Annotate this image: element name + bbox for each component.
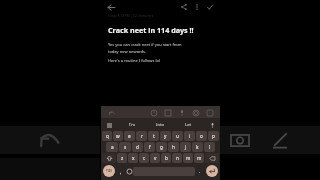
staticText: ?123 <box>106 169 112 173</box>
staticText: n <box>176 155 179 161</box>
button[interactable]: Modifier key <box>205 153 219 163</box>
staticText: . <box>199 168 201 174</box>
button[interactable]: r <box>136 131 147 141</box>
button[interactable]: v <box>150 153 160 163</box>
button[interactable]: translate <box>163 108 172 117</box>
button[interactable]: d <box>132 142 143 152</box>
button[interactable]: Symbols <box>103 165 115 177</box>
staticText: d <box>136 144 139 150</box>
staticText: Crack neet in 114 days !! <box>108 25 194 35</box>
staticText: r <box>141 133 143 139</box>
button[interactable]: m <box>194 153 204 163</box>
button[interactable]: m <box>183 153 193 163</box>
button[interactable]: clock <box>149 108 158 117</box>
button[interactable]: More options <box>192 2 202 12</box>
staticText: k <box>196 144 199 150</box>
button[interactable]: Period <box>196 167 204 175</box>
button[interactable]: Clipboard <box>105 121 113 129</box>
button[interactable]: o <box>196 131 207 141</box>
staticText: Yes you can crack neet if you start from… <box>108 42 182 54</box>
staticText: y <box>164 133 167 139</box>
staticText: t <box>153 133 155 139</box>
staticText: , <box>120 169 122 175</box>
staticText: l <box>209 144 211 150</box>
button[interactable]: c <box>139 153 149 163</box>
button[interactable]: l <box>204 142 215 152</box>
staticText: c <box>143 155 146 161</box>
staticText: x <box>132 155 135 161</box>
button[interactable]: s <box>119 142 131 152</box>
button[interactable]: j <box>180 142 191 152</box>
button[interactable]: p <box>208 131 219 141</box>
button[interactable]: e <box>124 131 135 141</box>
staticText: a <box>111 144 114 150</box>
staticText: b <box>165 155 168 161</box>
button[interactable]: g <box>156 142 167 152</box>
staticText: p <box>212 133 215 139</box>
button[interactable]: t <box>148 131 159 141</box>
staticText: o <box>200 133 203 139</box>
button[interactable]: Back <box>106 2 116 12</box>
button[interactable]: z <box>117 153 127 163</box>
button[interactable]: f <box>144 142 155 152</box>
button[interactable]: i <box>184 131 195 141</box>
button[interactable]: Toolbar expand <box>107 108 116 117</box>
button[interactable]: b <box>161 153 171 163</box>
staticText: j <box>185 144 187 150</box>
button[interactable]: h <box>168 142 179 152</box>
button[interactable]: Emoji <box>125 167 133 175</box>
button[interactable]: q <box>102 131 112 141</box>
staticText: u <box>176 133 179 139</box>
button[interactable]: sticker <box>205 108 214 117</box>
staticText: m <box>197 155 202 161</box>
button[interactable]: Share <box>179 2 189 12</box>
staticText: i <box>189 133 191 139</box>
staticText: w <box>116 133 120 139</box>
button[interactable]: n <box>172 153 182 163</box>
button[interactable]: u <box>172 131 183 141</box>
staticText: e <box>128 133 131 139</box>
button[interactable]: y <box>160 131 171 141</box>
button[interactable]: x <box>128 153 138 163</box>
button[interactable]: mic <box>177 108 186 117</box>
staticText: s <box>124 144 127 150</box>
button[interactable]: k <box>192 142 203 152</box>
button[interactable]: Let <box>185 122 192 128</box>
button[interactable]: Voice input <box>208 121 216 129</box>
staticText: v <box>154 155 157 161</box>
staticText: h <box>172 144 175 150</box>
button[interactable]: Modifier key <box>102 153 116 163</box>
staticText: g <box>160 144 163 150</box>
button[interactable]: Comma <box>117 168 124 175</box>
staticText: Today 8:12 PM | 32 characters <box>108 14 154 18</box>
button[interactable]: Into <box>156 122 165 128</box>
button[interactable]: settings <box>191 108 200 117</box>
button[interactable]: Enter <box>206 165 218 177</box>
button[interactable]: I'm <box>129 122 136 128</box>
button[interactable]: Done <box>205 2 215 12</box>
staticText: q <box>106 133 109 139</box>
button[interactable]: a <box>106 142 118 152</box>
staticText: z <box>121 155 124 161</box>
staticText: m <box>186 155 191 161</box>
staticText: Here's a routine I follows lol <box>108 58 160 63</box>
staticText: f <box>149 144 151 150</box>
button[interactable]: w <box>113 131 123 141</box>
